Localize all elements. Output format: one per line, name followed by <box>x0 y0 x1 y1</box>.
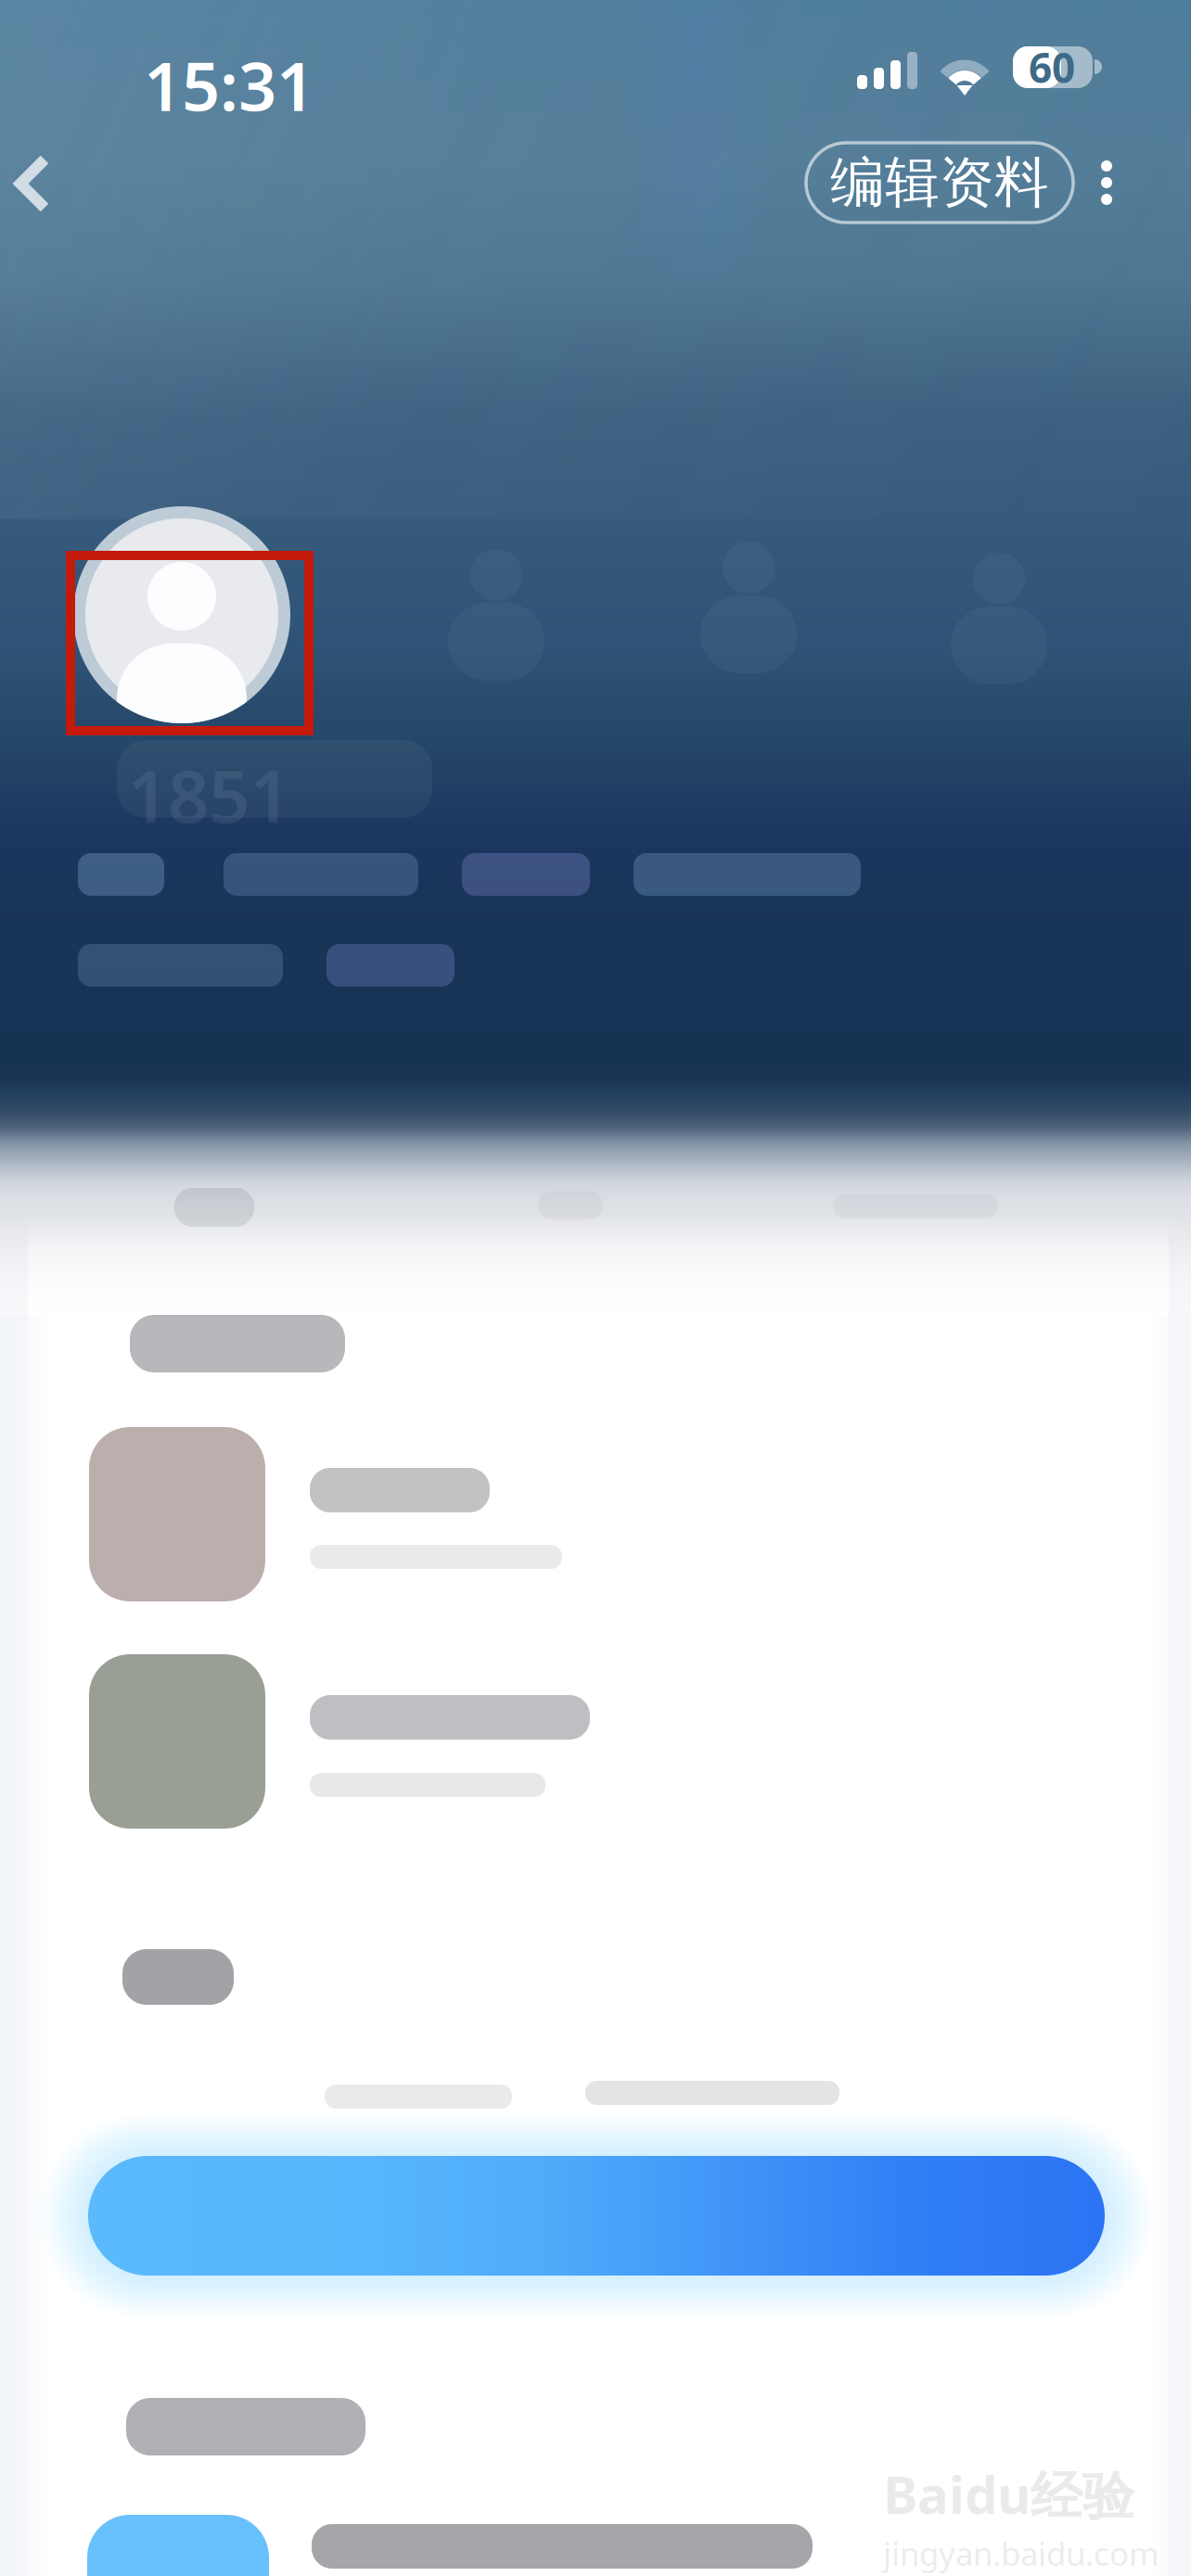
button[interactable]: 头像 <box>73 506 290 723</box>
button[interactable]: 更多 <box>1067 138 1146 227</box>
button[interactable]: 编辑资料 <box>806 143 1073 223</box>
staticText: jingyan.baidu.com <box>883 2532 1159 2575</box>
staticText: 编辑资料 <box>830 149 1049 216</box>
button[interactable] <box>89 1427 1098 1642</box>
staticText: Baidu经验 <box>883 2459 1134 2528</box>
button[interactable] <box>89 1654 1098 1869</box>
staticText: 1851 <box>127 747 290 843</box>
button[interactable]: 返回 <box>6 139 95 228</box>
staticText: 60 <box>1029 40 1075 94</box>
staticText: 15:31 <box>144 41 314 129</box>
